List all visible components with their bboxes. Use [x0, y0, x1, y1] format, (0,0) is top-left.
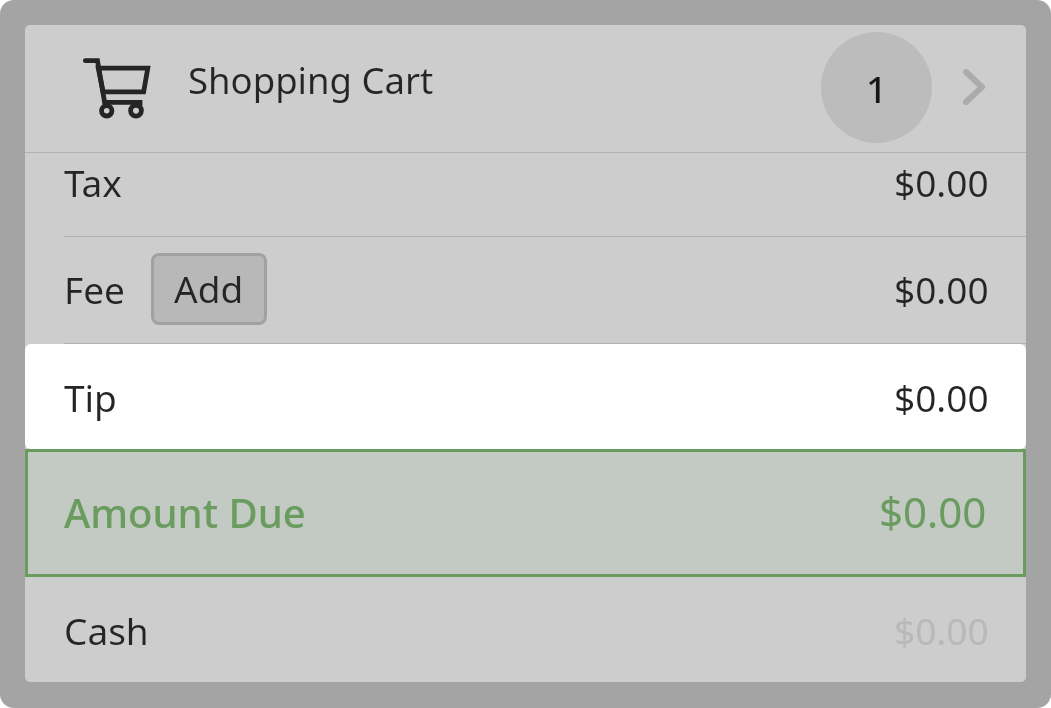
staticText: Tip [64, 372, 117, 422]
button[interactable]: Tip [25, 344, 1026, 449]
staticText: Cash [64, 605, 149, 655]
button[interactable]: Add [151, 253, 267, 325]
staticText: Amount Due [64, 485, 306, 539]
other: Open cart [963, 69, 985, 105]
button[interactable]: Tax [25, 152, 1026, 236]
staticText: $0.00 [894, 605, 989, 655]
staticText: Shopping Cart [188, 55, 434, 105]
button[interactable]: Cash [25, 577, 1026, 682]
button[interactable]: Fee [25, 236, 1026, 344]
button[interactable]: Amount Due [25, 449, 1026, 577]
staticText: Fee [64, 264, 125, 314]
staticText: $0.00 [879, 483, 987, 540]
button[interactable]: Shopping Cart [25, 25, 1026, 152]
staticText: $0.00 [894, 372, 989, 422]
staticText: $0.00 [894, 264, 989, 314]
staticText: Tax [64, 157, 122, 207]
staticText: $0.00 [894, 157, 989, 207]
staticText: 1 [866, 63, 888, 113]
staticText: Add [174, 263, 244, 313]
